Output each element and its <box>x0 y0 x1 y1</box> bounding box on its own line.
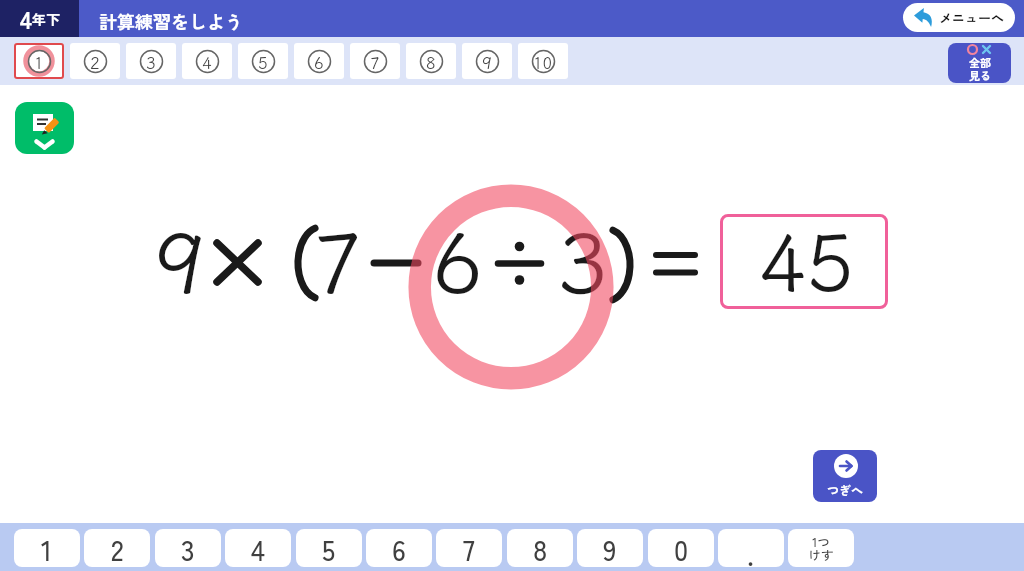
staticText: つぎへ <box>827 481 864 498</box>
staticText: 0 <box>674 529 689 567</box>
staticText: 10 <box>533 50 553 73</box>
staticText: 7 <box>463 529 475 567</box>
staticText: 8 <box>533 529 548 567</box>
staticText: 全部 見る <box>969 54 991 83</box>
staticText: 3 <box>181 529 195 567</box>
staticText: 6 <box>392 529 406 567</box>
staticText: 3 <box>557 194 609 317</box>
staticText: 6 <box>314 50 324 73</box>
staticText: 計算練習をしよう <box>99 8 243 34</box>
staticText: 4 <box>202 50 212 73</box>
staticText: 1つ けす <box>808 532 834 564</box>
staticText: 5 <box>258 50 268 73</box>
staticText: 9 <box>482 50 492 73</box>
staticText: 4 <box>251 529 265 567</box>
staticText: 1 <box>34 50 44 73</box>
staticText: 7 <box>370 50 380 73</box>
staticText: 45 <box>758 198 854 314</box>
staticText: . <box>747 534 755 571</box>
staticText: 7 <box>312 194 364 317</box>
staticText: 9 <box>603 529 617 567</box>
staticText: 1 <box>41 529 53 567</box>
staticText: 9 <box>154 194 206 317</box>
staticText: 3 <box>146 50 156 73</box>
staticText: 4 <box>20 1 32 36</box>
staticText: 6 <box>432 194 484 317</box>
staticText: 年下 <box>32 9 60 29</box>
staticText: 8 <box>426 50 436 73</box>
staticText: 2 <box>111 529 124 567</box>
staticText: メニューへ <box>939 8 1005 27</box>
staticText: 5 <box>322 529 336 567</box>
staticText: 2 <box>90 50 100 73</box>
